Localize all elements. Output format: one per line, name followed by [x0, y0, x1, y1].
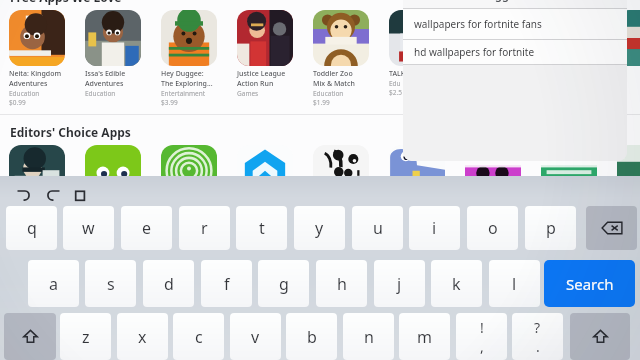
button[interactable]	[465, 145, 521, 201]
staticText: m	[417, 326, 432, 348]
staticText: v	[251, 326, 260, 348]
staticText: Games	[237, 89, 259, 98]
staticText: !	[480, 318, 484, 337]
staticText: t	[259, 217, 265, 239]
staticText: i	[432, 217, 437, 239]
button[interactable]	[389, 145, 445, 201]
staticText: w	[82, 217, 95, 239]
button[interactable]: k	[431, 260, 482, 307]
button[interactable]	[161, 145, 217, 201]
staticText: Adventures	[85, 79, 124, 89]
button[interactable]	[237, 145, 293, 201]
staticText: r	[201, 217, 208, 239]
staticText: $0.99	[9, 98, 26, 107]
staticText: Action Run	[237, 79, 274, 89]
button[interactable]: p	[525, 206, 576, 250]
staticText: d	[164, 273, 174, 295]
button[interactable]: c	[173, 313, 224, 360]
button[interactable]	[313, 145, 369, 201]
button[interactable]: Toddler Zoo	[313, 10, 385, 107]
staticText: The Exploring...	[161, 79, 213, 89]
button[interactable]: j	[374, 260, 425, 307]
button[interactable]: i	[409, 206, 460, 250]
button[interactable]: Redo	[41, 183, 65, 207]
button[interactable]: Justice League	[237, 10, 309, 98]
staticText: u	[373, 217, 383, 239]
button[interactable]: f	[201, 260, 252, 307]
button[interactable]: Neita: Kingdom	[9, 10, 81, 107]
button[interactable]: Paste	[68, 183, 92, 207]
button[interactable]: d	[143, 260, 194, 307]
staticText: g	[279, 273, 289, 295]
button[interactable]	[541, 145, 597, 201]
button[interactable]: n	[343, 313, 394, 360]
button[interactable]: a	[28, 260, 79, 307]
staticText: n	[364, 326, 374, 348]
button[interactable]: e	[121, 206, 172, 250]
button[interactable]: Issa's Edible	[85, 10, 157, 98]
button[interactable]: Shift	[570, 313, 630, 360]
button[interactable]: g	[258, 260, 309, 307]
button[interactable]: TALK	[389, 10, 461, 97]
button[interactable]: y	[294, 206, 345, 250]
staticText: $3.99	[161, 98, 178, 107]
button[interactable]	[541, 10, 613, 69]
button[interactable]: u	[352, 206, 403, 250]
button[interactable]: z	[60, 313, 111, 360]
button[interactable]: Undo	[11, 183, 35, 207]
button[interactable]: !	[456, 313, 507, 360]
staticText: Toddler Zoo	[313, 69, 353, 79]
button[interactable]: wallpapers for fortnite fans	[403, 9, 627, 39]
button[interactable]: q	[6, 206, 57, 250]
button[interactable]	[9, 145, 65, 201]
staticText: x	[138, 326, 147, 348]
staticText: Free Apps We Love	[10, 0, 122, 5]
staticText: j	[397, 273, 402, 295]
staticText: Search	[566, 274, 614, 294]
button[interactable]: l	[489, 260, 540, 307]
button[interactable]: v	[230, 313, 281, 360]
staticText: wallpapers for fortnite fans	[414, 17, 542, 31]
button[interactable]: ?	[512, 313, 563, 360]
button[interactable]: Hey Duggee:	[161, 10, 233, 107]
staticText: TALK	[389, 69, 406, 79]
staticText: Editors' Choice Apps	[10, 124, 131, 140]
button[interactable]: h	[316, 260, 367, 307]
button[interactable]: Delete	[586, 206, 637, 250]
staticText: z	[82, 326, 90, 348]
button[interactable]: r	[179, 206, 230, 250]
staticText: $2.5	[389, 88, 402, 97]
staticText: $1.99	[313, 98, 330, 107]
button[interactable]: t	[236, 206, 287, 250]
button[interactable]: w	[63, 206, 114, 250]
button[interactable]: s	[85, 260, 136, 307]
staticText: Mix & Match	[313, 79, 355, 89]
staticText: b	[307, 326, 317, 348]
staticText: q	[27, 217, 37, 239]
button[interactable]: hd wallpapers for fortnite	[403, 40, 627, 64]
button[interactable]	[617, 145, 640, 201]
staticText: Education	[9, 89, 40, 98]
staticText: Neita: Kingdom	[9, 69, 62, 79]
staticText: f	[224, 273, 230, 295]
staticText: s	[107, 273, 115, 295]
staticText: .	[536, 337, 540, 356]
staticText: hd wallpapers for fortnite	[414, 45, 535, 59]
button[interactable]: Search	[544, 260, 635, 307]
staticText: c	[195, 326, 203, 348]
button[interactable]: x	[117, 313, 168, 360]
staticText: Suggestions	[482, 0, 548, 2]
button[interactable]: o	[467, 206, 518, 250]
button[interactable]: Bo	[617, 10, 640, 89]
button[interactable]	[85, 145, 141, 201]
button[interactable]: m	[399, 313, 450, 360]
staticText: o	[488, 217, 498, 239]
button[interactable]: Shift	[4, 313, 56, 360]
button[interactable]: b	[286, 313, 337, 360]
staticText: Entertainment	[161, 89, 206, 98]
button[interactable]	[465, 10, 537, 69]
staticText: Justice League	[237, 69, 286, 79]
staticText: e	[142, 217, 152, 239]
staticText: y	[315, 217, 324, 239]
